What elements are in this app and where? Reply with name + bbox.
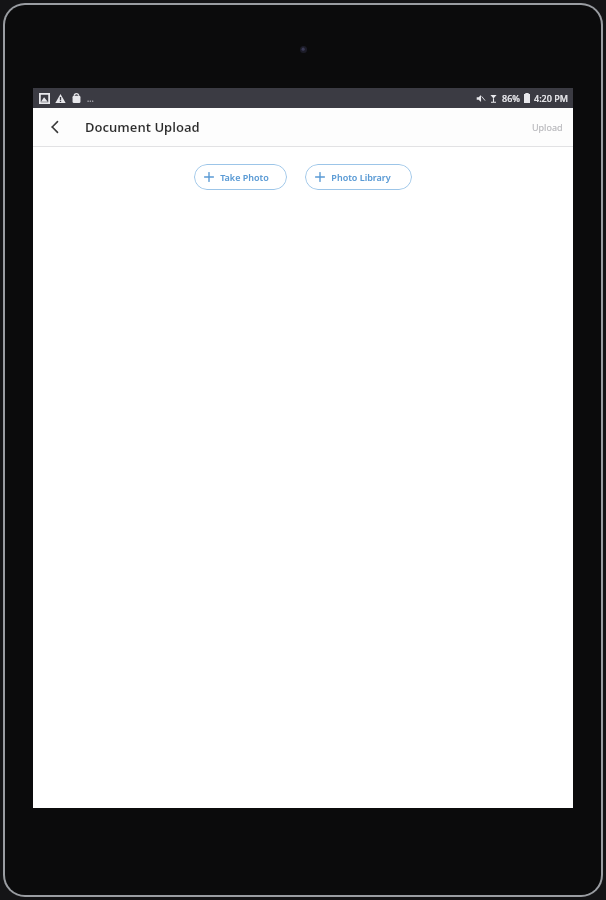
staticText: Take Photo (220, 171, 269, 183)
staticText: 86% (502, 92, 520, 104)
button[interactable]: Upload (526, 115, 569, 139)
staticText: 4:20 PM (534, 92, 568, 104)
button[interactable]: Take Photo (194, 164, 287, 190)
staticText: Document Upload (85, 118, 200, 136)
button[interactable]: Photo Library (305, 164, 412, 190)
button[interactable]: Back (39, 111, 71, 143)
staticText: ... (87, 93, 94, 104)
staticText: Photo Library (331, 171, 391, 183)
staticText: Upload (532, 121, 563, 133)
